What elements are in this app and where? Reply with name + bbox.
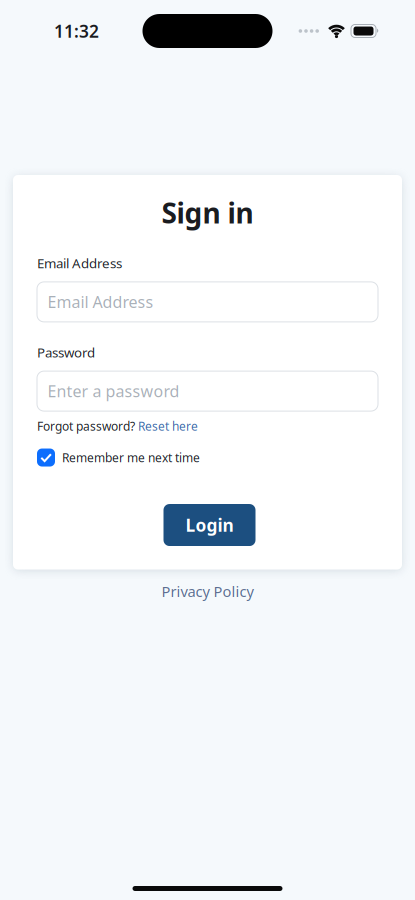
staticText: 11:32	[54, 19, 99, 42]
staticText: Sign in	[161, 194, 253, 231]
staticText: Password	[37, 343, 95, 361]
staticText: Remember me next time	[62, 450, 200, 465]
staticText: Forgot password?	[37, 418, 135, 434]
button[interactable]: Remember me next time	[37, 448, 378, 466]
button[interactable]: Login	[163, 504, 255, 546]
staticText: Privacy Policy	[161, 581, 253, 601]
staticText: Enter a password	[47, 380, 179, 402]
button[interactable]: Reset here	[138, 418, 198, 434]
staticText: Login	[185, 513, 233, 536]
button[interactable]: Email Address	[37, 282, 378, 322]
staticText: Email Address	[37, 254, 122, 272]
button[interactable]: Enter a password	[37, 371, 378, 411]
button[interactable]: Privacy Policy	[161, 581, 253, 601]
staticText: Reset here	[138, 418, 198, 434]
staticText: Email Address	[47, 291, 153, 312]
